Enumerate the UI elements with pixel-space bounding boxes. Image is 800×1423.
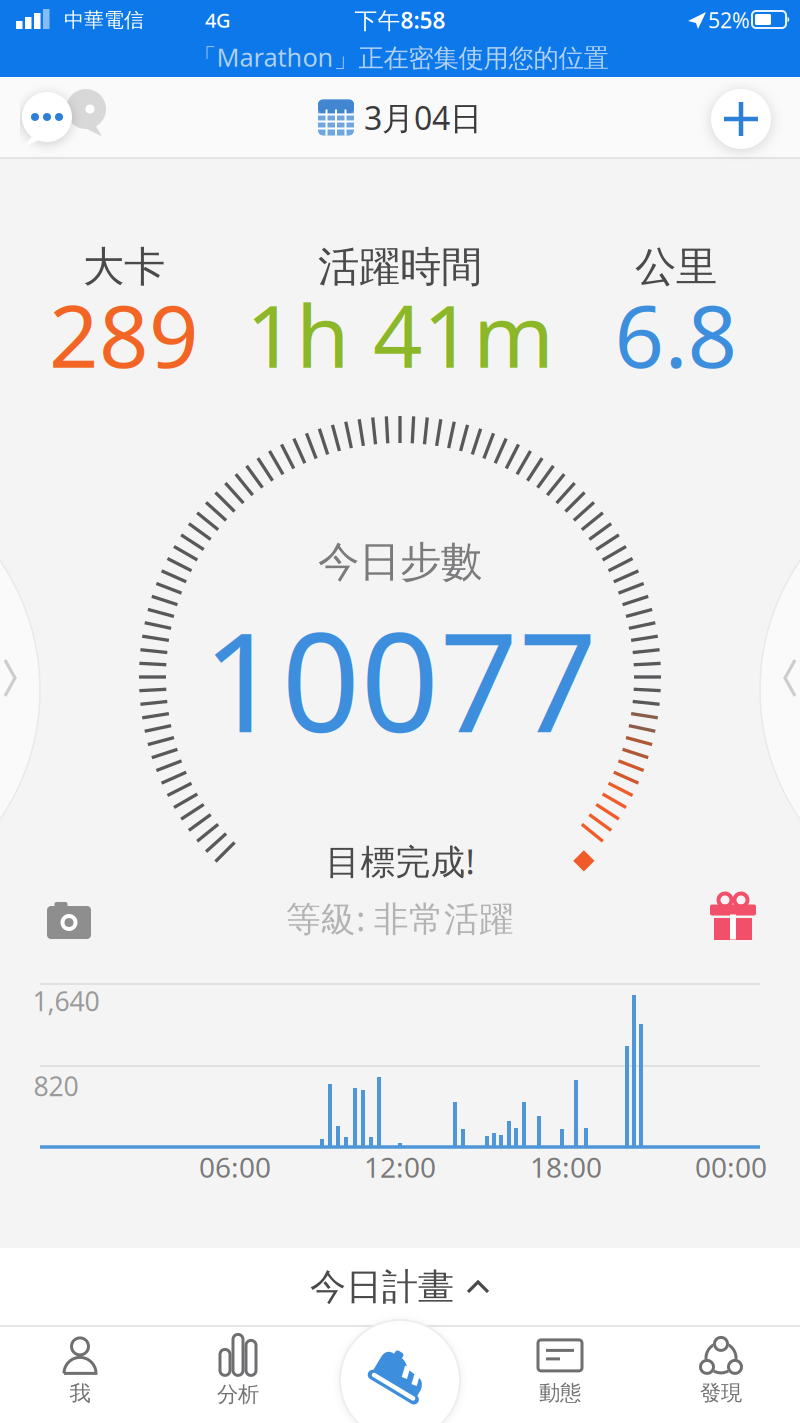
button[interactable]: Previous page bbox=[0, 656, 28, 700]
staticText: 公里 bbox=[635, 242, 717, 292]
staticText: 1,640 bbox=[32, 983, 99, 1019]
button[interactable]: Choose date bbox=[318, 77, 482, 158]
button[interactable]: Next page bbox=[772, 656, 800, 700]
button[interactable]: Add bbox=[711, 89, 771, 149]
button[interactable]: 今日計畫 bbox=[0, 1248, 800, 1326]
staticText: 4G bbox=[205, 7, 231, 33]
button[interactable]: Camera bbox=[47, 899, 91, 939]
staticText: 00:00 bbox=[695, 1148, 767, 1186]
staticText: 10077 bbox=[202, 588, 597, 770]
staticText: 目標完成! bbox=[325, 838, 474, 884]
staticText: 我 bbox=[69, 1380, 90, 1407]
staticText: 18:00 bbox=[530, 1148, 602, 1186]
staticText: 3月04日 bbox=[364, 96, 482, 139]
staticText: 分析 bbox=[217, 1381, 259, 1408]
staticText: 等級: 非常活躍 bbox=[286, 895, 514, 941]
staticText: 中華電信 bbox=[64, 8, 144, 32]
staticText: 06:00 bbox=[199, 1148, 271, 1186]
staticText: 動態 bbox=[539, 1380, 581, 1406]
staticText: 12:00 bbox=[364, 1148, 436, 1186]
button[interactable]: 我 bbox=[20, 1328, 140, 1416]
button[interactable]: Steps bbox=[340, 1320, 460, 1423]
staticText: 今日步數 bbox=[318, 537, 482, 587]
staticText: 今日計畫 bbox=[310, 1265, 454, 1309]
staticText: 活躍時間 bbox=[318, 242, 482, 292]
button[interactable]: 動態 bbox=[500, 1329, 620, 1417]
button[interactable]: Rewards bbox=[709, 895, 757, 941]
staticText: 「Marathon」正在密集使用您的位置 bbox=[191, 40, 608, 74]
staticText: 820 bbox=[33, 1068, 78, 1104]
staticText: 發現 bbox=[700, 1380, 742, 1406]
button[interactable]: Messages bbox=[0, 76, 110, 157]
button[interactable]: 發現 bbox=[661, 1327, 781, 1415]
staticText: 1h 41m bbox=[246, 276, 554, 392]
staticText: 6.8 bbox=[614, 276, 737, 392]
staticText: 289 bbox=[49, 276, 199, 392]
button[interactable]: 分析 bbox=[178, 1327, 298, 1415]
staticText: 下午8:58 bbox=[354, 5, 445, 35]
staticText: 大卡 bbox=[83, 242, 165, 292]
staticText: 52% bbox=[708, 6, 750, 34]
